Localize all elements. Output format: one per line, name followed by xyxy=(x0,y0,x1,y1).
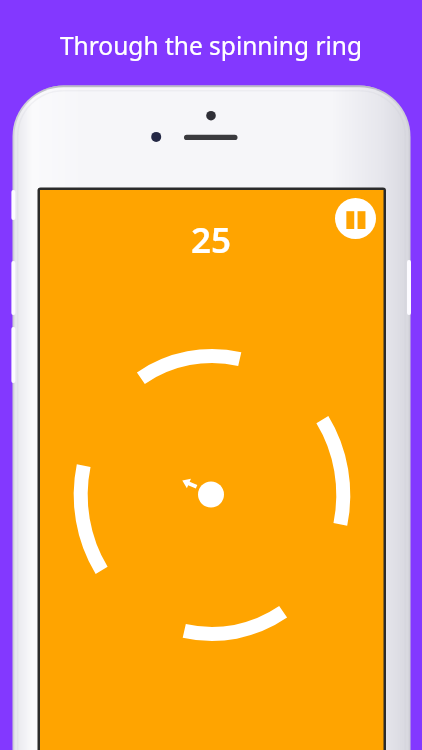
button[interactable]: Pause xyxy=(335,198,376,239)
staticText: 25 xyxy=(0,216,422,750)
button[interactable]: Tap to steer the ball xyxy=(40,190,384,750)
staticText: Through the spinning ring xyxy=(0,29,422,750)
